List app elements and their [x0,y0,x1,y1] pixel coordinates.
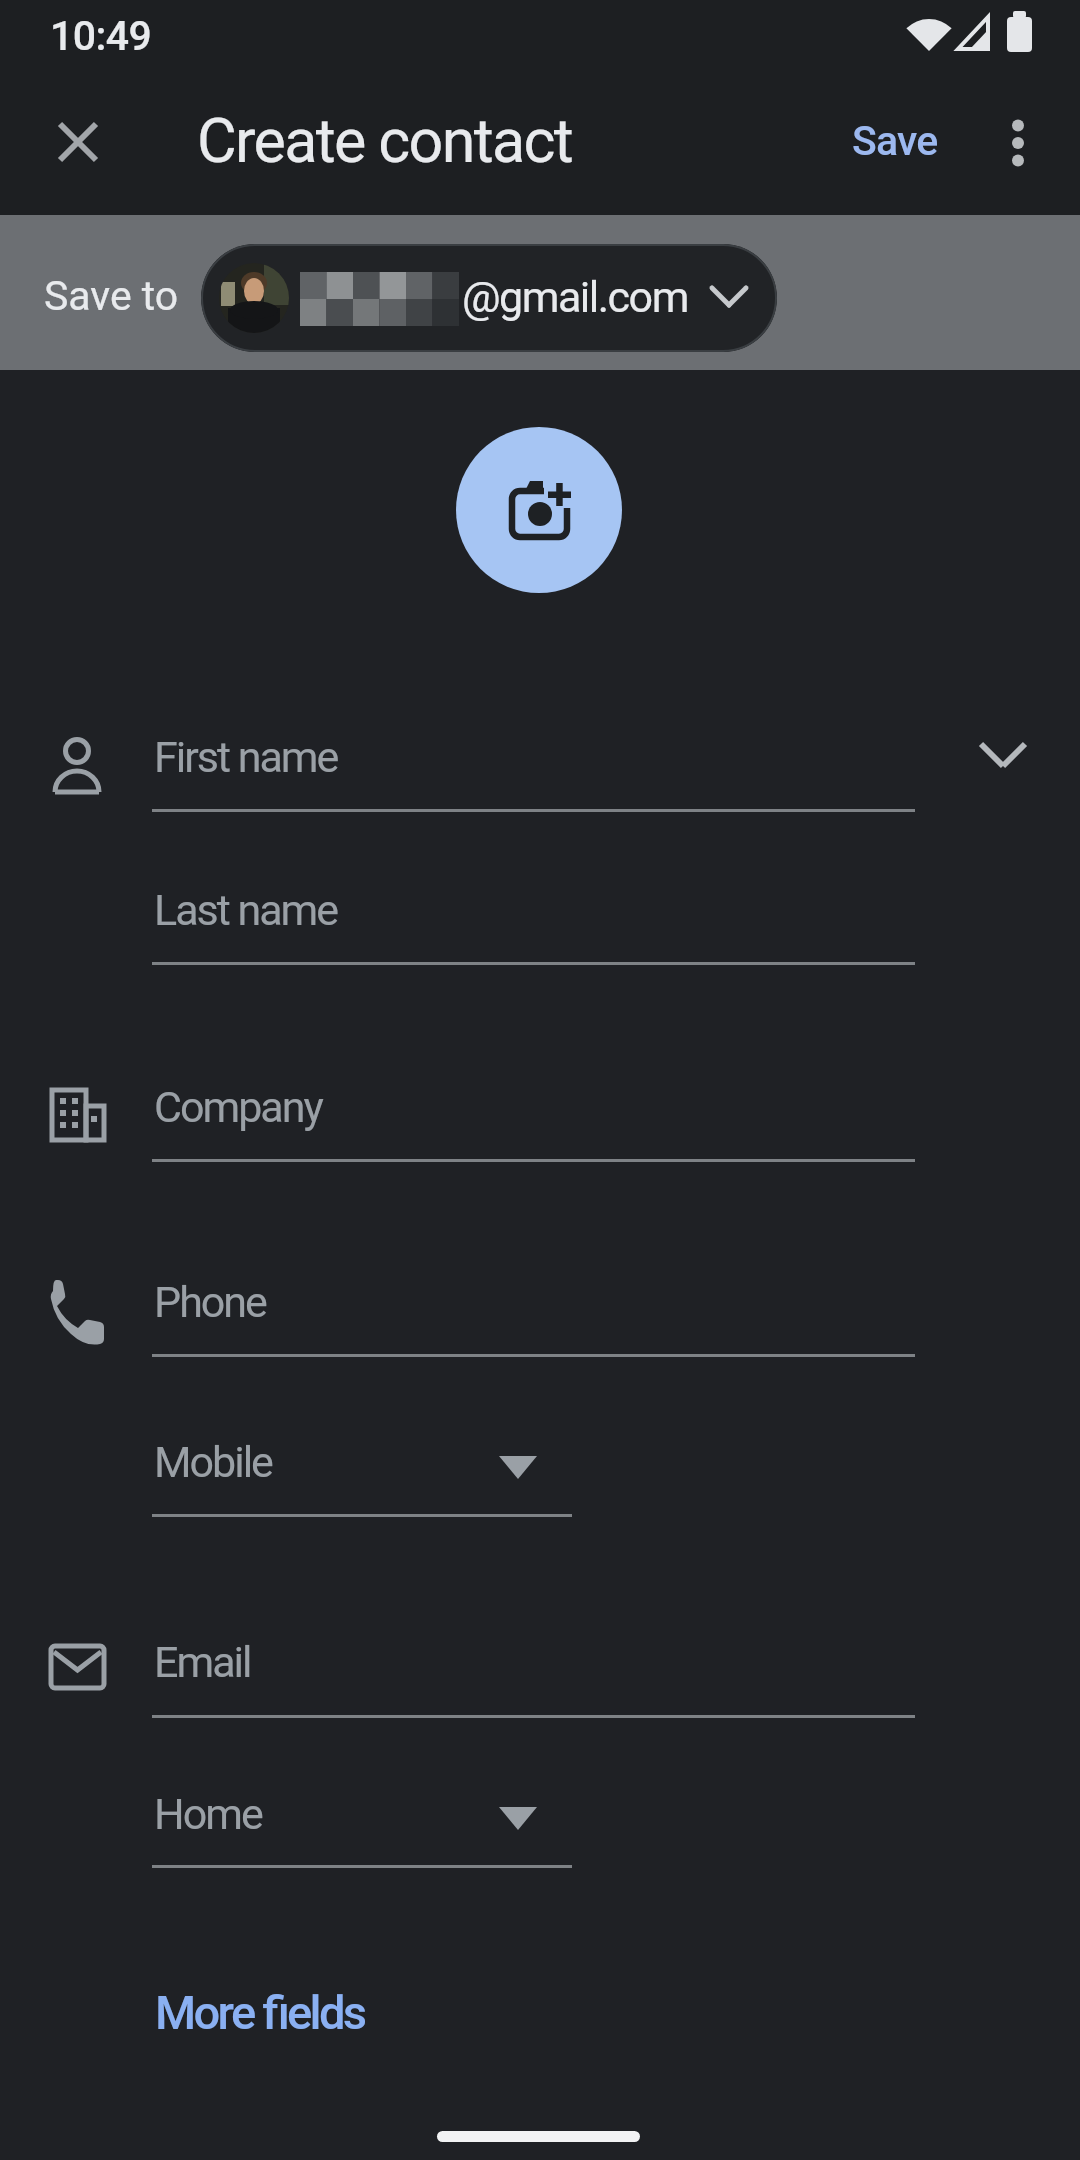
button[interactable]: @gmail.com [201,244,777,352]
staticText: Phone [154,1277,266,1327]
staticText: Email [154,1637,251,1687]
button[interactable]: First name [152,720,915,812]
staticText: Save to [44,272,179,320]
button[interactable]: Home [152,1777,572,1869]
button[interactable]: Last name [152,873,915,965]
staticText: 10:49 [50,12,152,60]
staticText: @gmail.com [462,272,688,322]
staticText: Mobile [154,1437,272,1487]
button[interactable] [48,112,108,172]
staticText: Create contact [197,105,573,176]
staticText: Company [154,1082,322,1132]
staticText: Home [154,1789,262,1839]
button[interactable] [456,427,622,593]
button[interactable]: Phone [152,1265,915,1357]
button[interactable]: Mobile [152,1425,572,1517]
staticText: More fields [155,1985,365,2040]
button[interactable] [988,112,1048,172]
button[interactable]: Save [830,105,955,180]
staticText: Save [852,117,938,165]
staticText: First name [154,732,338,782]
button[interactable]: More fields [140,1965,380,2045]
staticText: Last name [154,885,338,935]
button[interactable]: Company [152,1070,915,1162]
button[interactable]: Email [152,1625,915,1717]
